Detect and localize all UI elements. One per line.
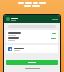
button[interactable] (6, 60, 58, 65)
other: Bank account (8, 47, 12, 51)
button[interactable]: Bank account (6, 45, 58, 53)
button[interactable]: Profile (6, 17, 10, 21)
button[interactable] (6, 30, 58, 43)
